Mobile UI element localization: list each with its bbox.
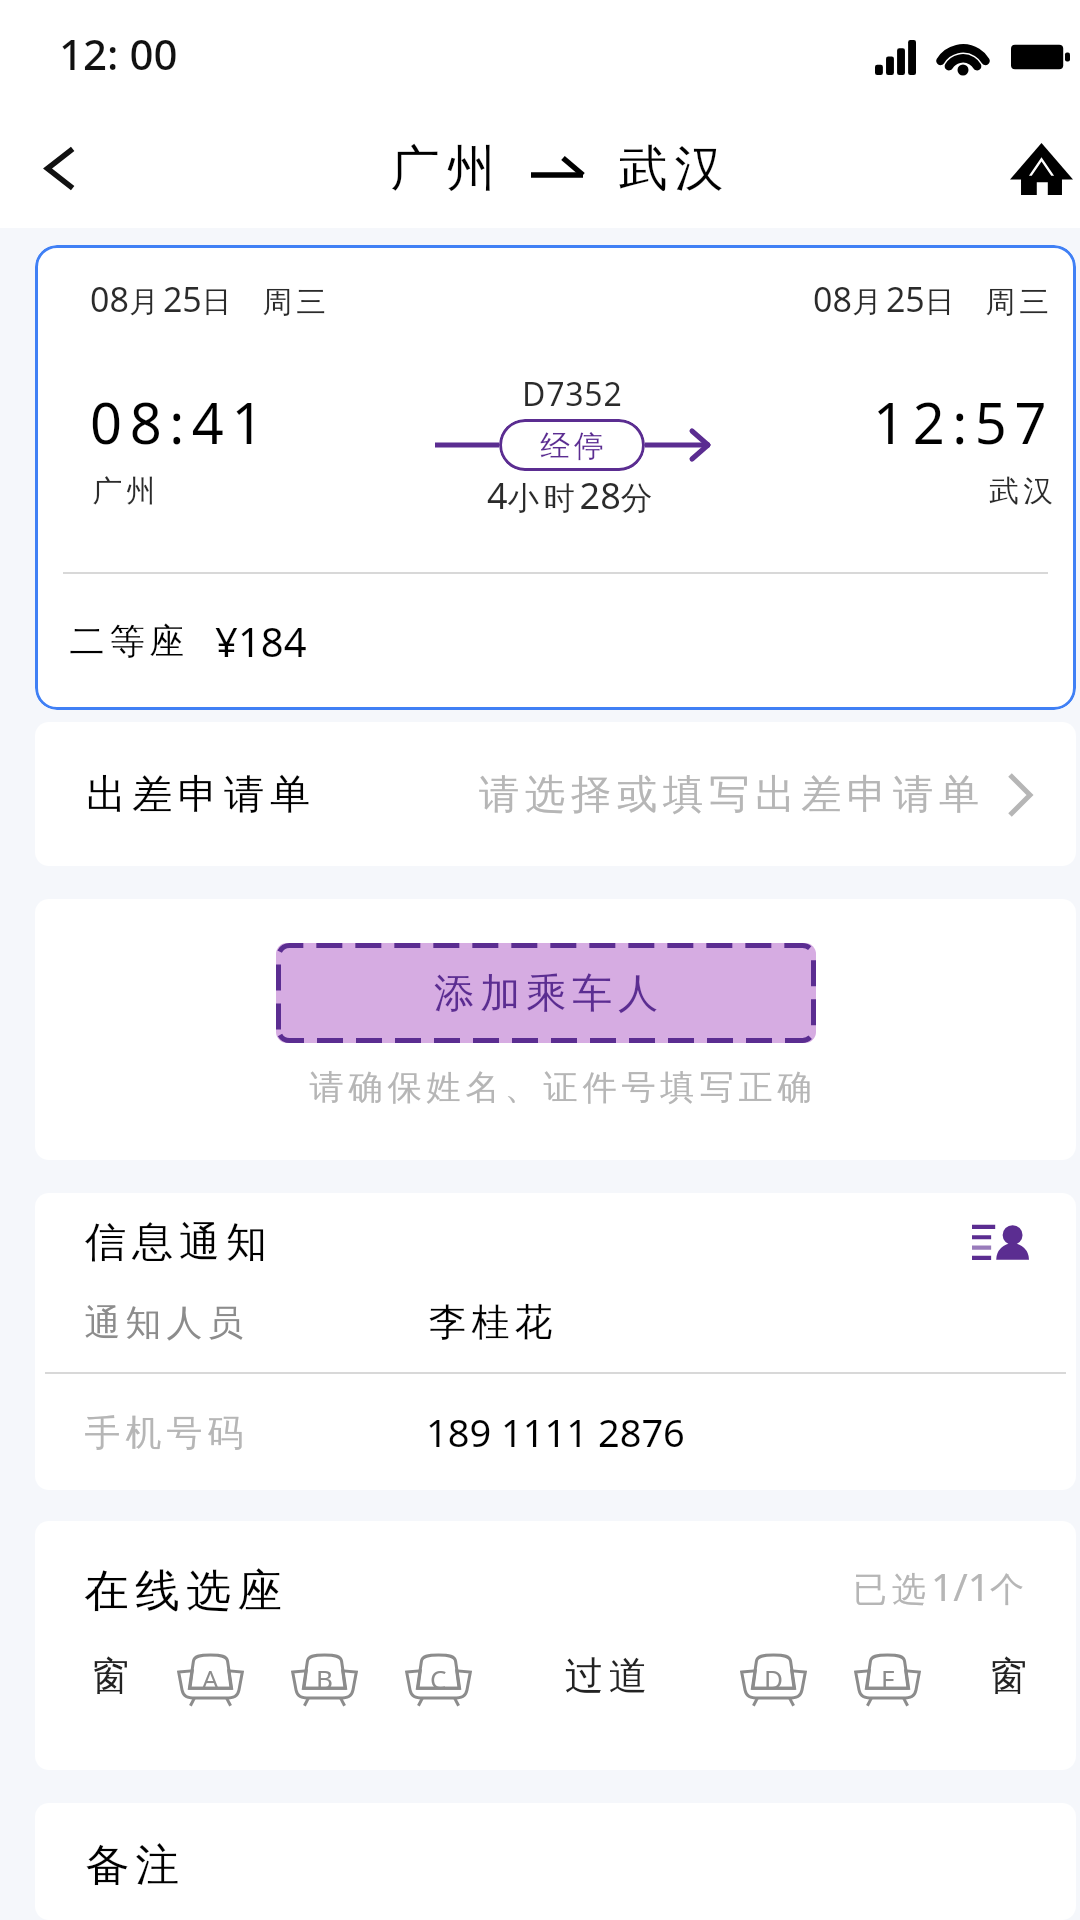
staticText: C bbox=[430, 1661, 447, 1696]
staticText: 08月25日 周三 bbox=[90, 276, 331, 322]
button[interactable]: Back bbox=[0, 113, 117, 223]
button[interactable]: 添加乘车人 bbox=[276, 943, 816, 1043]
staticText: 在线选座 bbox=[81, 1563, 285, 1619]
staticText: 李桂花 bbox=[426, 1299, 555, 1346]
staticText: 二等座 bbox=[67, 619, 187, 663]
staticText: B bbox=[316, 1661, 333, 1696]
button[interactable]: Select contact bbox=[958, 1211, 1044, 1273]
staticText: A bbox=[202, 1661, 219, 1696]
staticText: 08月25日 周三 bbox=[813, 276, 1054, 322]
button[interactable]: Home bbox=[970, 118, 1080, 228]
staticText: 189 1111 2876 bbox=[426, 1406, 685, 1458]
staticText: 添加乘车人 bbox=[431, 968, 661, 1019]
staticText: 信息通知 bbox=[82, 1216, 270, 1268]
staticText: 出差申请单 bbox=[83, 769, 313, 820]
staticText: 武汉 bbox=[987, 472, 1055, 509]
staticText: D bbox=[764, 1661, 783, 1696]
staticText: ¥184 bbox=[215, 614, 307, 668]
staticText: 过道 bbox=[562, 1652, 650, 1701]
staticText: 08:41 bbox=[90, 384, 272, 460]
staticText: 请确保姓名、证件号填写正确 bbox=[307, 1066, 814, 1109]
staticText: D7352 bbox=[522, 372, 623, 416]
staticText: 经停 bbox=[538, 427, 606, 464]
staticText: 12:57 bbox=[873, 384, 1055, 460]
staticText: 武汉 bbox=[615, 138, 727, 200]
staticText: 12: 00 bbox=[59, 25, 178, 82]
staticText: 广州 bbox=[90, 472, 158, 509]
staticText: 备注 bbox=[82, 1838, 182, 1893]
staticText: 请选择或填写出差申请单 bbox=[476, 769, 982, 820]
staticText: 通知人员 bbox=[82, 1300, 246, 1345]
staticText: 手机号码 bbox=[82, 1410, 246, 1455]
staticText: 已选1/1个 bbox=[853, 1559, 1030, 1612]
staticText: F bbox=[881, 1661, 895, 1696]
button[interactable]: 出差申请单 bbox=[35, 722, 1076, 866]
staticText: 广州 bbox=[387, 138, 499, 200]
staticText: 4小时28分 bbox=[487, 471, 657, 520]
staticText: 窗 bbox=[88, 1652, 132, 1701]
staticText: 窗 bbox=[986, 1652, 1030, 1701]
